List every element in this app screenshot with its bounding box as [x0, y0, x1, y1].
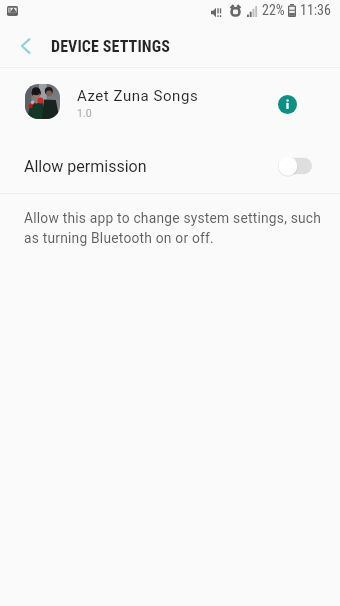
staticText: 11:36	[300, 2, 331, 18]
staticText: DEVICE SETTINGS	[51, 37, 170, 56]
button[interactable]: Navigate up	[4, 26, 48, 67]
button[interactable]: App info	[268, 85, 306, 123]
staticText: Allow this app to change system settings…	[24, 210, 326, 246]
button[interactable]: Allow permission	[267, 148, 317, 184]
staticText: 1.0	[77, 107, 92, 119]
staticText: 22%	[262, 2, 285, 18]
button[interactable]: Allow permission	[0, 135, 340, 193]
staticText: Allow permission	[24, 157, 147, 176]
staticText: Azet Zuna Songs	[77, 87, 199, 105]
button[interactable]: Azet Zuna Songs	[0, 68, 340, 135]
